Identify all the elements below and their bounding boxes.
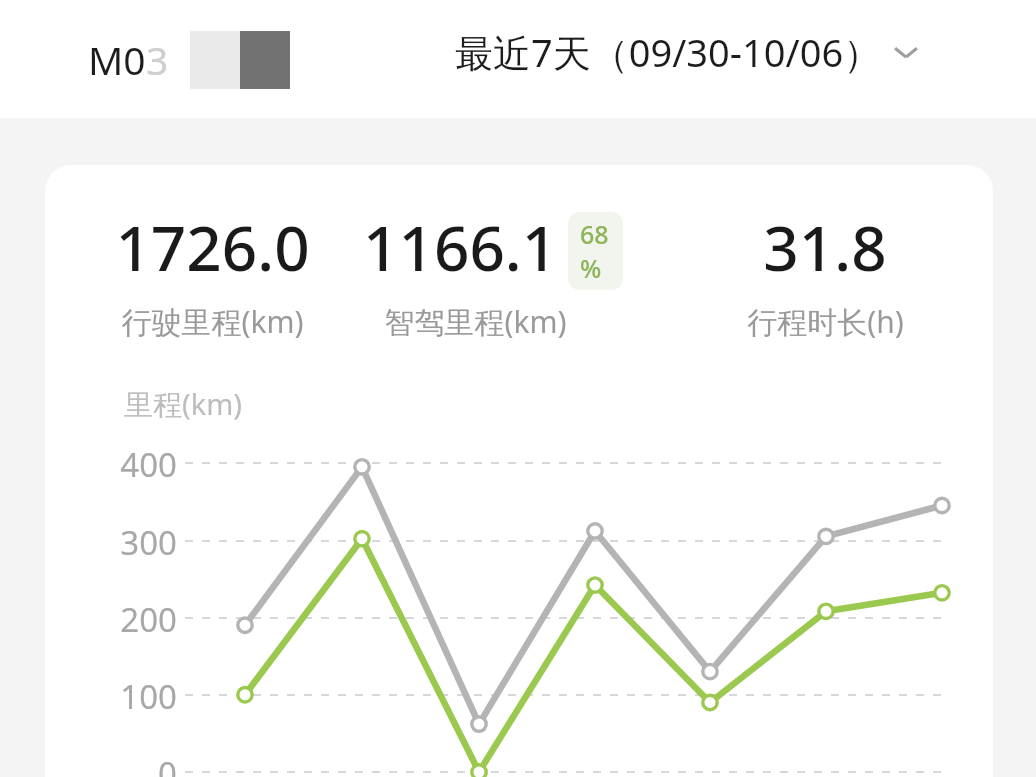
staticText: 400 [87,442,177,487]
button[interactable]: M0 [88,33,169,86]
staticText: 行驶里程(km) [121,301,304,342]
staticText: 最近7天（09/30-10/06） [455,26,882,78]
staticText: 3 [146,33,169,86]
staticText: 1726.0 [115,205,310,289]
other: Expand date range [882,28,930,76]
staticText: M0 [88,33,146,86]
staticText: 里程(km) [124,384,243,424]
staticText: 行程时长(h) [747,301,904,342]
button[interactable]: 1166.1 [363,205,623,342]
staticText: 100 [87,674,177,719]
button[interactable]: 31.8 [690,205,960,342]
staticText: 31.8 [763,205,887,289]
staticText: 68% [580,217,611,285]
staticText: 0 [87,751,177,777]
staticText: 300 [87,520,177,565]
button[interactable]: 最近7天（09/30-10/06） [455,26,930,78]
button[interactable]: 1726.0 [90,205,335,342]
staticText: 200 [87,597,177,642]
staticText: 智驾里程(km) [384,301,567,342]
staticText: 1166.1 [363,205,558,289]
